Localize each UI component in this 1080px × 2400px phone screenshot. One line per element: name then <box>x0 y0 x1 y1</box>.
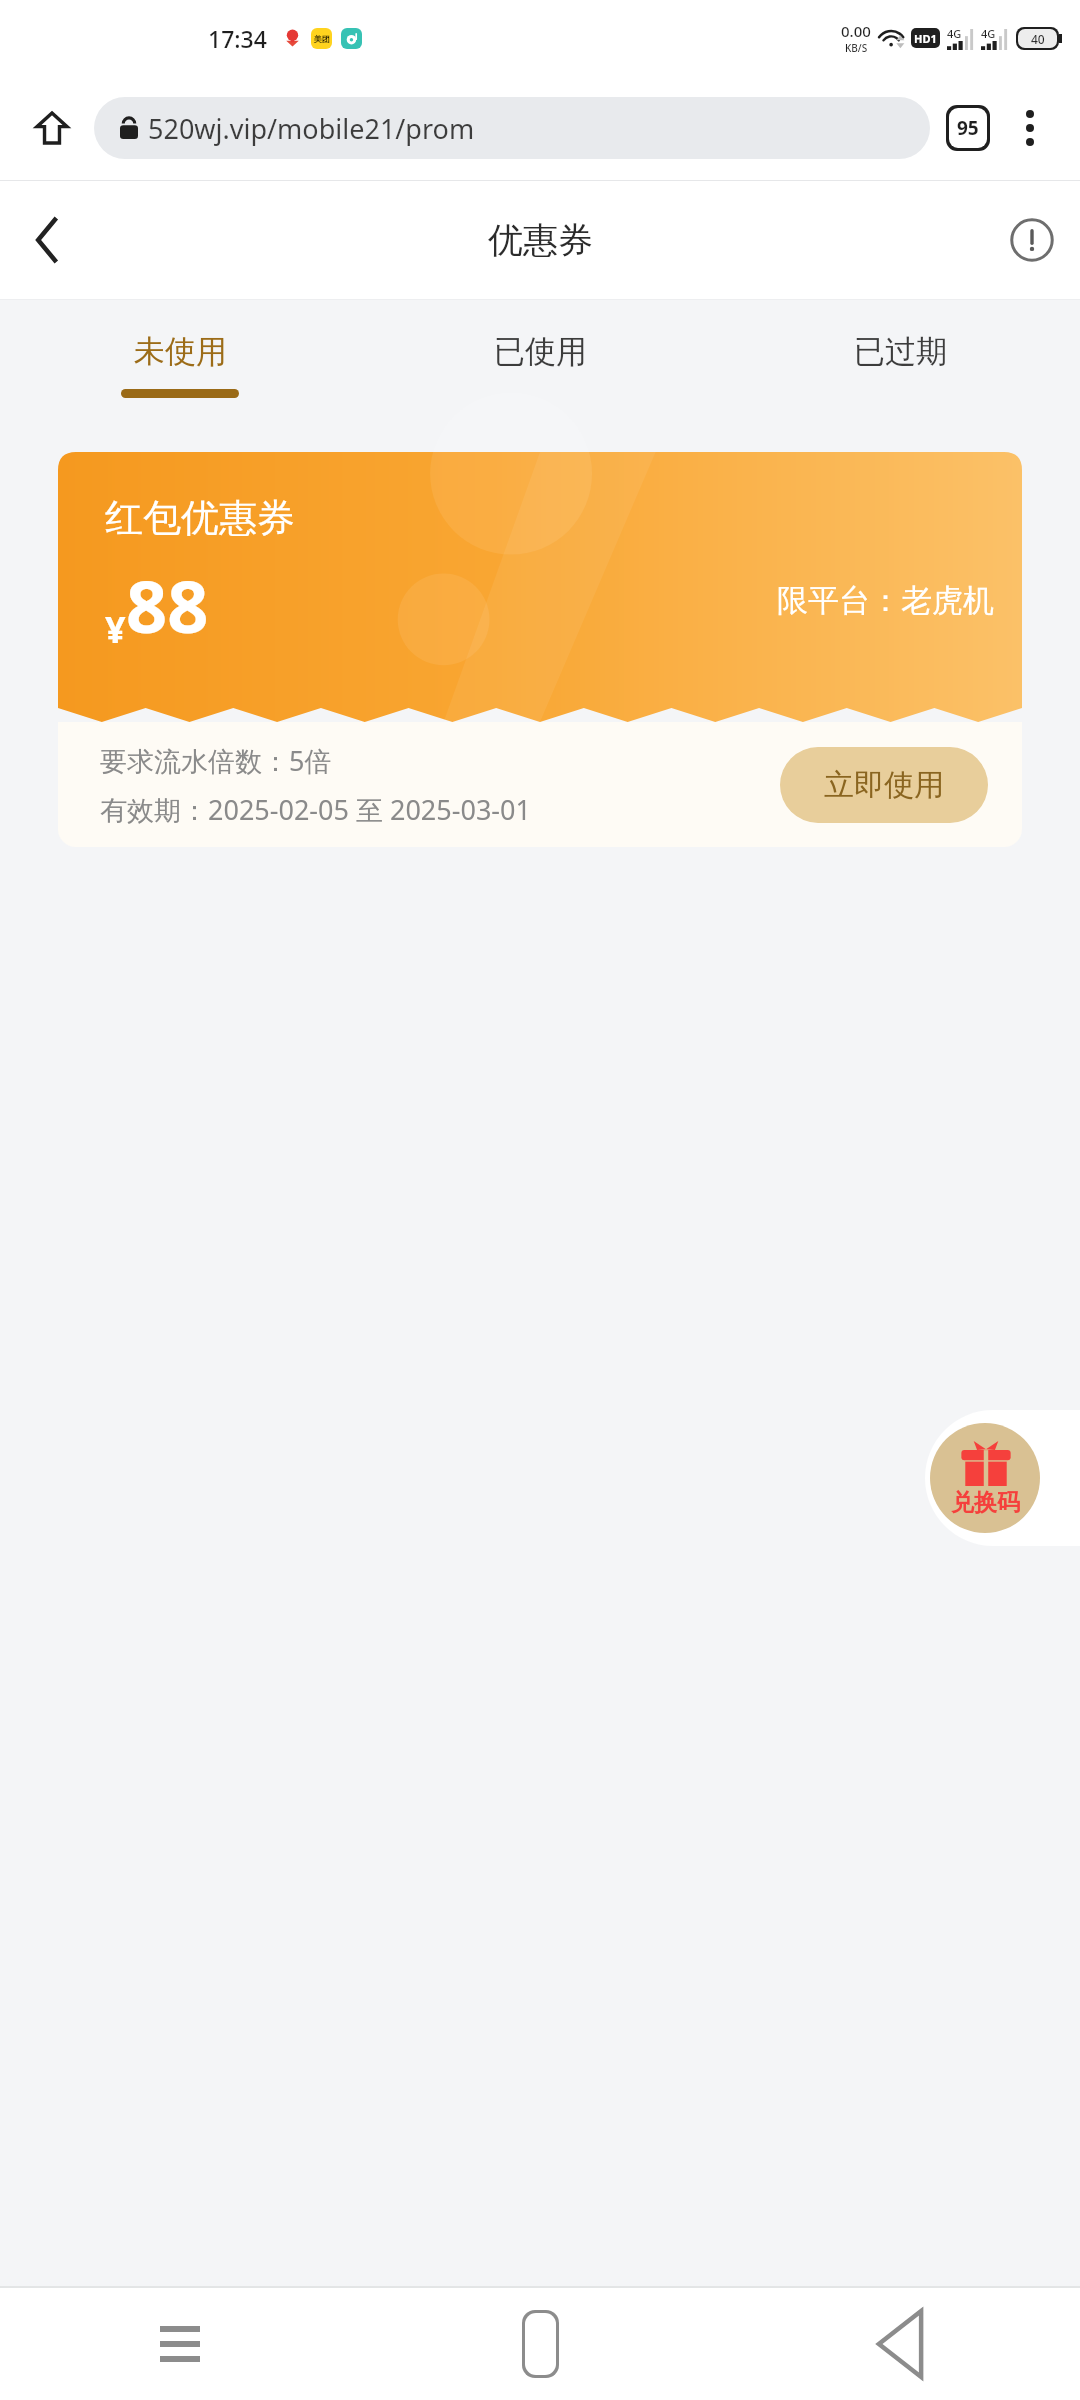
staticText: 已过期 <box>854 332 947 371</box>
staticText: KB/S <box>845 41 868 55</box>
button[interactable]: Back <box>0 192 96 288</box>
staticText: 要求流水倍数：5倍 <box>100 742 332 779</box>
button[interactable]: Back <box>720 2288 1080 2400</box>
staticText: 40 <box>1031 31 1045 47</box>
button[interactable]: 立即使用 <box>780 747 988 823</box>
button[interactable]: More options <box>1004 102 1056 154</box>
staticText: 88 <box>126 556 209 654</box>
button[interactable]: 520wj.vip/mobile21/prom <box>94 97 930 159</box>
staticText: HD1 <box>914 31 937 46</box>
staticText: 95 <box>957 115 979 141</box>
staticText: 17:34 <box>208 23 267 54</box>
button[interactable]: Home <box>360 2288 720 2400</box>
staticText: 立即使用 <box>824 766 944 804</box>
staticText: 0.00 <box>841 21 871 41</box>
staticText: 兑换码 <box>951 1488 1020 1517</box>
staticText: 4G <box>947 26 962 41</box>
staticText: 520wj.vip/mobile21/prom <box>148 110 475 147</box>
button[interactable]: Recent apps <box>0 2288 360 2400</box>
staticText: ¥ <box>105 605 126 654</box>
button[interactable]: 未使用 <box>0 300 360 424</box>
staticText: 优惠券 <box>488 218 593 262</box>
button[interactable]: Home <box>24 100 80 156</box>
staticText: 有效期：2025-02-05 至 2025-03-01 <box>100 791 531 828</box>
button[interactable]: 已过期 <box>720 300 1080 424</box>
staticText: 未使用 <box>134 332 227 371</box>
staticText: 4G <box>981 26 996 41</box>
button[interactable]: Tabs <box>942 102 994 154</box>
button[interactable]: 红包优惠券 <box>58 452 1022 847</box>
staticText: 限平台：老虎机 <box>777 581 994 620</box>
staticText: 红包优惠券 <box>105 494 295 542</box>
staticText: 美团 <box>314 34 330 44</box>
staticText: 已使用 <box>494 332 587 371</box>
button[interactable]: 已使用 <box>360 300 720 424</box>
button[interactable]: Info <box>984 192 1080 288</box>
button[interactable]: Redeem code <box>925 1410 1080 1546</box>
